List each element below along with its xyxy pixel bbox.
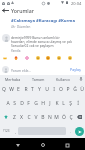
button[interactable]: X (18, 110, 25, 124)
button[interactable]: , (13, 124, 18, 138)
button[interactable]: Backspace (74, 110, 85, 124)
staticText: X (20, 114, 23, 121)
button[interactable]: R (22, 83, 29, 96)
staticText: hazırdan, elimde sonuca ulaşmış ve çok (11, 39, 72, 43)
button[interactable]: K (53, 96, 60, 110)
button[interactable]: N (46, 110, 53, 124)
button[interactable]: Ş (67, 96, 74, 110)
staticText: Ö (62, 114, 66, 121)
staticText: D (20, 100, 24, 107)
button[interactable]: H (39, 96, 46, 110)
staticText: Yorum ekle... (11, 68, 32, 72)
button[interactable]: Shift (0, 110, 11, 124)
button[interactable]: Fire reaction (13, 55, 18, 60)
staticText: Kullanıcı (56, 77, 71, 82)
staticText: #Calısmaya #Kuracagı #Kurma (11, 18, 75, 24)
button[interactable]: E (15, 83, 22, 96)
button[interactable]: Yanıtla (11, 49, 21, 53)
staticText: Ç (69, 114, 73, 121)
staticText: Yorumlar (11, 7, 34, 14)
staticText: J (49, 100, 51, 107)
button[interactable]: J (46, 96, 53, 110)
button[interactable]: U (43, 83, 50, 96)
staticText: V (34, 114, 38, 121)
staticText: G (34, 100, 38, 107)
button[interactable]: O (57, 83, 64, 96)
button[interactable]: Y (36, 83, 43, 96)
staticText: H (41, 100, 45, 107)
button[interactable]: Q (0, 83, 8, 96)
button[interactable]: L (60, 96, 67, 110)
button[interactable]: Home (37, 139, 49, 150)
button[interactable]: Voice input (76, 75, 85, 83)
staticText: Ü (80, 86, 84, 93)
button[interactable]: Recents (61, 139, 73, 150)
button[interactable]: Send (75, 127, 84, 136)
staticText: B (41, 114, 45, 121)
button[interactable]: B (39, 110, 46, 124)
button[interactable]: I (50, 83, 57, 96)
button[interactable]: Kullanıcı (51, 75, 76, 83)
button[interactable]: F (25, 96, 32, 110)
button[interactable]: Back (0, 6, 11, 15)
staticText: T (31, 86, 34, 93)
staticText: L (62, 100, 65, 107)
button[interactable]: W (8, 83, 15, 96)
staticText: Z (13, 114, 16, 121)
staticText: C (27, 114, 31, 121)
button[interactable]: Back (12, 139, 24, 150)
staticText: M (54, 114, 59, 121)
button[interactable]: C (25, 110, 32, 124)
staticText: W (9, 86, 14, 93)
staticText: Q (2, 86, 6, 93)
staticText: A (6, 100, 10, 107)
button[interactable]: Tamam (26, 75, 51, 83)
staticText: P (66, 86, 70, 93)
staticText: İ (77, 100, 79, 107)
button[interactable]: Reaction (35, 55, 40, 60)
button[interactable]: Crown reaction (2, 55, 7, 60)
button[interactable]: T (29, 83, 36, 96)
button[interactable]: G (32, 96, 39, 110)
staticText: Y (38, 86, 41, 93)
button[interactable]: Reaction (45, 55, 50, 60)
staticText: 4h · Düzenlen (11, 25, 31, 29)
button[interactable]: Z (11, 110, 18, 124)
button[interactable]: D (18, 96, 25, 110)
button[interactable]: Ğ (71, 83, 78, 96)
button[interactable]: ?123 (0, 124, 13, 138)
staticText: demirjie9999 Bunun anlamlı bir (11, 35, 60, 39)
button[interactable]: Flower reaction (24, 55, 29, 60)
button[interactable]: Ö (60, 110, 67, 124)
button[interactable]: Merhaba (0, 75, 26, 83)
staticText: ?123 (3, 129, 10, 133)
staticText: . (70, 129, 71, 134)
button[interactable]: V (32, 110, 39, 124)
staticText: U (45, 86, 49, 93)
staticText: , (15, 129, 16, 134)
staticText: Ğ (73, 86, 77, 93)
staticText: N (48, 114, 52, 121)
button[interactable]: Reaction (56, 55, 61, 60)
button[interactable]: Paylaş (68, 67, 83, 72)
button[interactable]: Ç (67, 110, 74, 124)
staticText: Tamam (32, 77, 45, 82)
button[interactable]: Ü (78, 83, 85, 96)
staticText: Sonuclar02 cok ve paylaşım (11, 43, 54, 47)
staticText: I (53, 86, 55, 93)
button[interactable]: M (53, 110, 60, 124)
button[interactable]: İ (74, 96, 81, 110)
staticText: E (17, 86, 20, 93)
button[interactable]: P (64, 83, 71, 96)
button[interactable]: Reaction (67, 55, 72, 60)
staticText: F (27, 100, 30, 107)
staticText: Ş (69, 100, 72, 107)
staticText: Merhaba (5, 77, 21, 82)
button[interactable]: A (4, 96, 11, 110)
staticText: Paylaş (70, 67, 81, 72)
button[interactable]: S (11, 96, 18, 110)
staticText: O (59, 86, 63, 93)
button[interactable]: Yorum ekle... (11, 64, 68, 75)
